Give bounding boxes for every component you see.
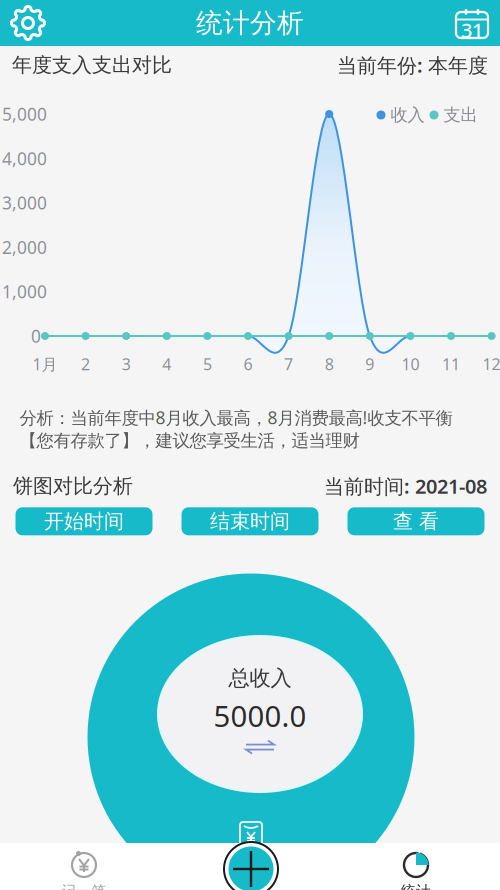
- staticText: 31: [461, 17, 483, 43]
- staticText: 5,000: [2, 102, 47, 125]
- staticText: 收入: [390, 104, 424, 126]
- staticText: 统计: [401, 882, 431, 890]
- staticText: 6: [243, 353, 252, 375]
- button[interactable]: 开始时间: [15, 507, 152, 535]
- button[interactable]: 统计: [333, 843, 499, 890]
- staticText: 当前年份: 本年度: [337, 52, 488, 78]
- button[interactable]: Add: [221, 839, 281, 890]
- staticText: 1,000: [2, 280, 47, 303]
- staticText: 结束时间: [210, 509, 290, 534]
- staticText: 当前时间: 2021-08: [324, 473, 487, 499]
- staticText: 0: [31, 324, 41, 347]
- staticText: 分析：当前年度中8月收入最高，8月消费最高!收支不平衡: [19, 406, 452, 429]
- staticText: 支出: [443, 104, 477, 126]
- staticText: 9: [365, 353, 374, 375]
- staticText: 12: [483, 353, 500, 375]
- button[interactable]: Calendar: [444, 0, 500, 46]
- staticText: 查 看: [393, 509, 439, 534]
- staticText: 饼图对比分析: [13, 474, 133, 498]
- button[interactable]: 记一笔: [1, 843, 167, 890]
- staticText: 3,000: [2, 191, 47, 214]
- button[interactable]: Settings: [0, 0, 56, 46]
- staticText: 总收入: [228, 665, 291, 691]
- staticText: 3: [122, 353, 131, 375]
- staticText: 4: [162, 353, 171, 375]
- staticText: 开始时间: [44, 509, 124, 534]
- staticText: 7: [284, 353, 293, 375]
- button[interactable]: Add record: [167, 843, 333, 890]
- staticText: 统计分析: [196, 7, 304, 39]
- staticText: 年度支入支出对比: [12, 53, 172, 77]
- staticText: 8: [325, 353, 334, 375]
- staticText: 10: [401, 353, 419, 375]
- staticText: 5: [203, 353, 212, 375]
- staticText: 【您有存款了】，建议您享受生活，适当理财: [19, 430, 359, 451]
- staticText: 记一笔: [61, 882, 106, 890]
- staticText: 2,000: [2, 236, 47, 259]
- button[interactable]: 查 看: [347, 507, 484, 535]
- button[interactable]: 结束时间: [181, 507, 318, 535]
- staticText: 11: [442, 353, 460, 375]
- staticText: 4,000: [2, 147, 47, 170]
- staticText: 5000.0: [213, 696, 306, 735]
- staticText: 2: [81, 353, 90, 375]
- staticText: 1月: [32, 353, 57, 375]
